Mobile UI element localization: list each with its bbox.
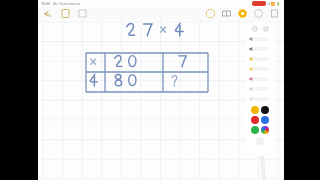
- button[interactable]: Colour: [251, 106, 259, 114]
- button[interactable]: Marker: [248, 64, 272, 74]
- button[interactable]: Colour: [261, 116, 269, 124]
- staticText: 10:06: [41, 1, 51, 6]
- button[interactable]: Share: [253, 8, 264, 19]
- button[interactable]: Ruler: [248, 94, 272, 104]
- button[interactable]: Pen: [248, 34, 272, 44]
- button[interactable]: More: [269, 8, 280, 19]
- button[interactable]: Colour picker: [261, 126, 269, 134]
- staticText: 4 📶 🔋: [268, 1, 281, 6]
- button[interactable]: More tools: [256, 137, 264, 145]
- button[interactable]: Pen tool: [205, 8, 216, 19]
- button[interactable]: Note: [60, 8, 71, 19]
- button[interactable]: Pencil: [248, 44, 272, 54]
- button[interactable]: Lasso: [248, 84, 272, 94]
- button[interactable]: Pages: [77, 8, 88, 19]
- button[interactable]: Grid: [221, 8, 232, 19]
- button[interactable]: Colour: [251, 116, 259, 124]
- button[interactable]: Highlighter: [248, 54, 272, 64]
- button[interactable]: Colour: [261, 106, 269, 114]
- staticText: Mr. Fitzsimmons: [53, 1, 81, 6]
- button[interactable]: Undo: [42, 8, 53, 19]
- button[interactable]: Colour: [251, 126, 259, 134]
- button[interactable]: Record: [237, 8, 248, 19]
- button[interactable]: Undo redo: [248, 25, 272, 32]
- button[interactable]: Eraser: [248, 74, 272, 84]
